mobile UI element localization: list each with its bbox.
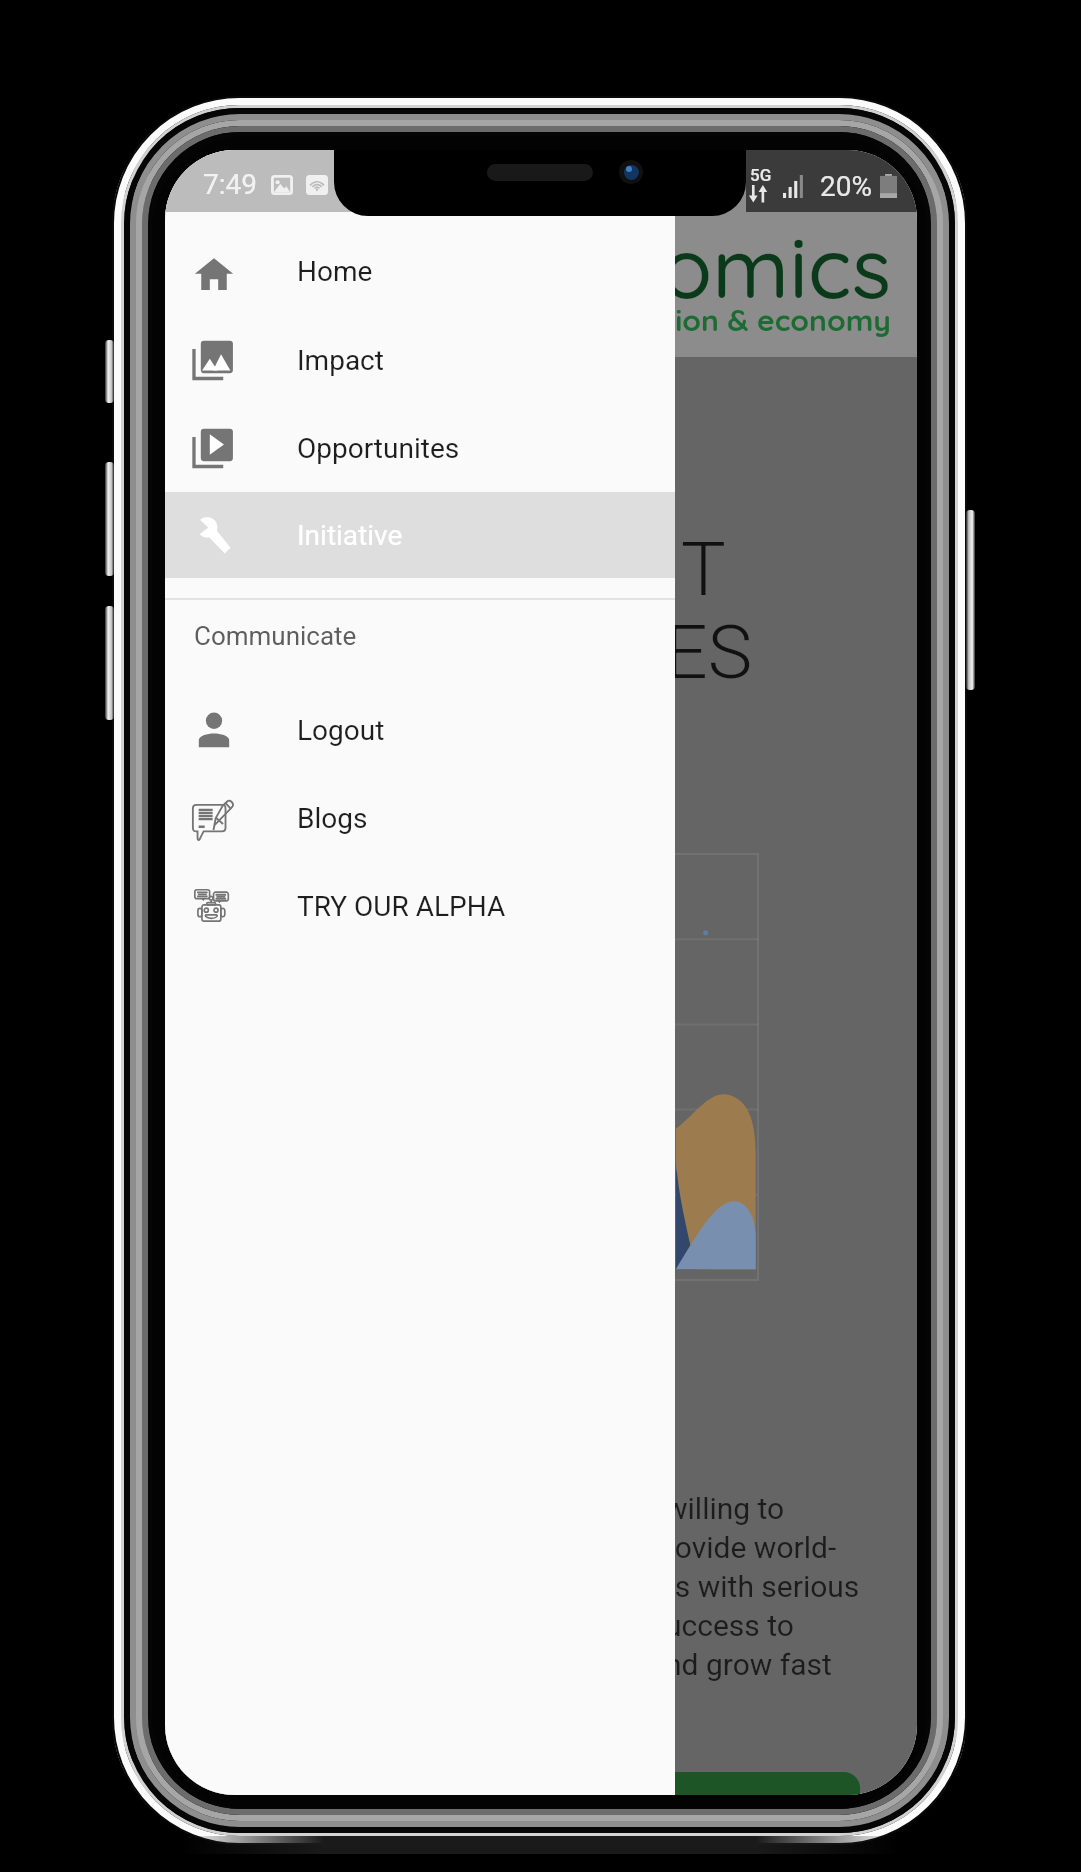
staticText: willing to bbox=[665, 1491, 785, 1526]
staticText: ts with serious bbox=[665, 1569, 860, 1604]
staticText: Communicate bbox=[194, 621, 357, 651]
staticText: omics bbox=[661, 214, 892, 319]
staticText: Home bbox=[297, 255, 373, 288]
staticText: ES bbox=[665, 608, 753, 696]
staticText: Logout bbox=[297, 714, 385, 747]
button[interactable]: Logout bbox=[165, 687, 675, 773]
staticText: 5G bbox=[750, 165, 772, 185]
staticText: 20% bbox=[820, 170, 872, 203]
button[interactable]: Blogs bbox=[165, 775, 675, 861]
button[interactable]: Initiative bbox=[165, 492, 675, 578]
button[interactable]: Impact bbox=[165, 317, 675, 403]
staticText: Impact bbox=[297, 344, 384, 377]
staticText: 7:49 bbox=[203, 168, 257, 201]
staticText: uccess to bbox=[665, 1608, 794, 1643]
staticText: Opportunites bbox=[297, 432, 460, 465]
staticText: tion & economy bbox=[663, 301, 891, 339]
button[interactable]: Home bbox=[165, 228, 675, 314]
staticText: T bbox=[681, 525, 726, 613]
staticText: Initiative bbox=[297, 519, 403, 552]
button[interactable]: Opportunites bbox=[165, 405, 675, 491]
staticText: nd grow fast bbox=[665, 1647, 832, 1682]
button[interactable]: TRY OUR ALPHA bbox=[165, 863, 675, 949]
staticText: rovide world- bbox=[665, 1530, 837, 1565]
staticText: TRY OUR ALPHA bbox=[297, 890, 506, 923]
staticText: Blogs bbox=[297, 802, 368, 835]
